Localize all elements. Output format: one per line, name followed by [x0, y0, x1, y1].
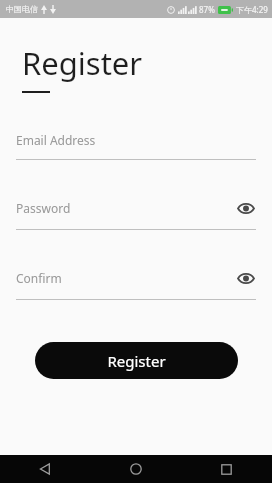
staticText: Register [107, 351, 166, 371]
staticText: Register [22, 42, 143, 84]
button[interactable]: Confirm [16, 268, 256, 300]
staticText: Confirm [16, 270, 236, 286]
staticText: Password [16, 200, 236, 216]
button[interactable]: Register [35, 342, 238, 379]
button[interactable]: Back [0, 455, 90, 483]
staticText: 中国电信 [6, 4, 38, 14]
button[interactable]: Password [16, 198, 256, 230]
button[interactable]: Email Address [16, 132, 256, 160]
button[interactable]: Show confirm password [236, 268, 256, 288]
button[interactable]: Home [90, 455, 181, 483]
staticText: 87% [199, 4, 215, 15]
staticText: 下午4:29 [236, 4, 268, 15]
button[interactable]: Recent apps [181, 455, 272, 483]
button[interactable]: Show password [236, 198, 256, 218]
staticText: Email Address [16, 132, 256, 148]
